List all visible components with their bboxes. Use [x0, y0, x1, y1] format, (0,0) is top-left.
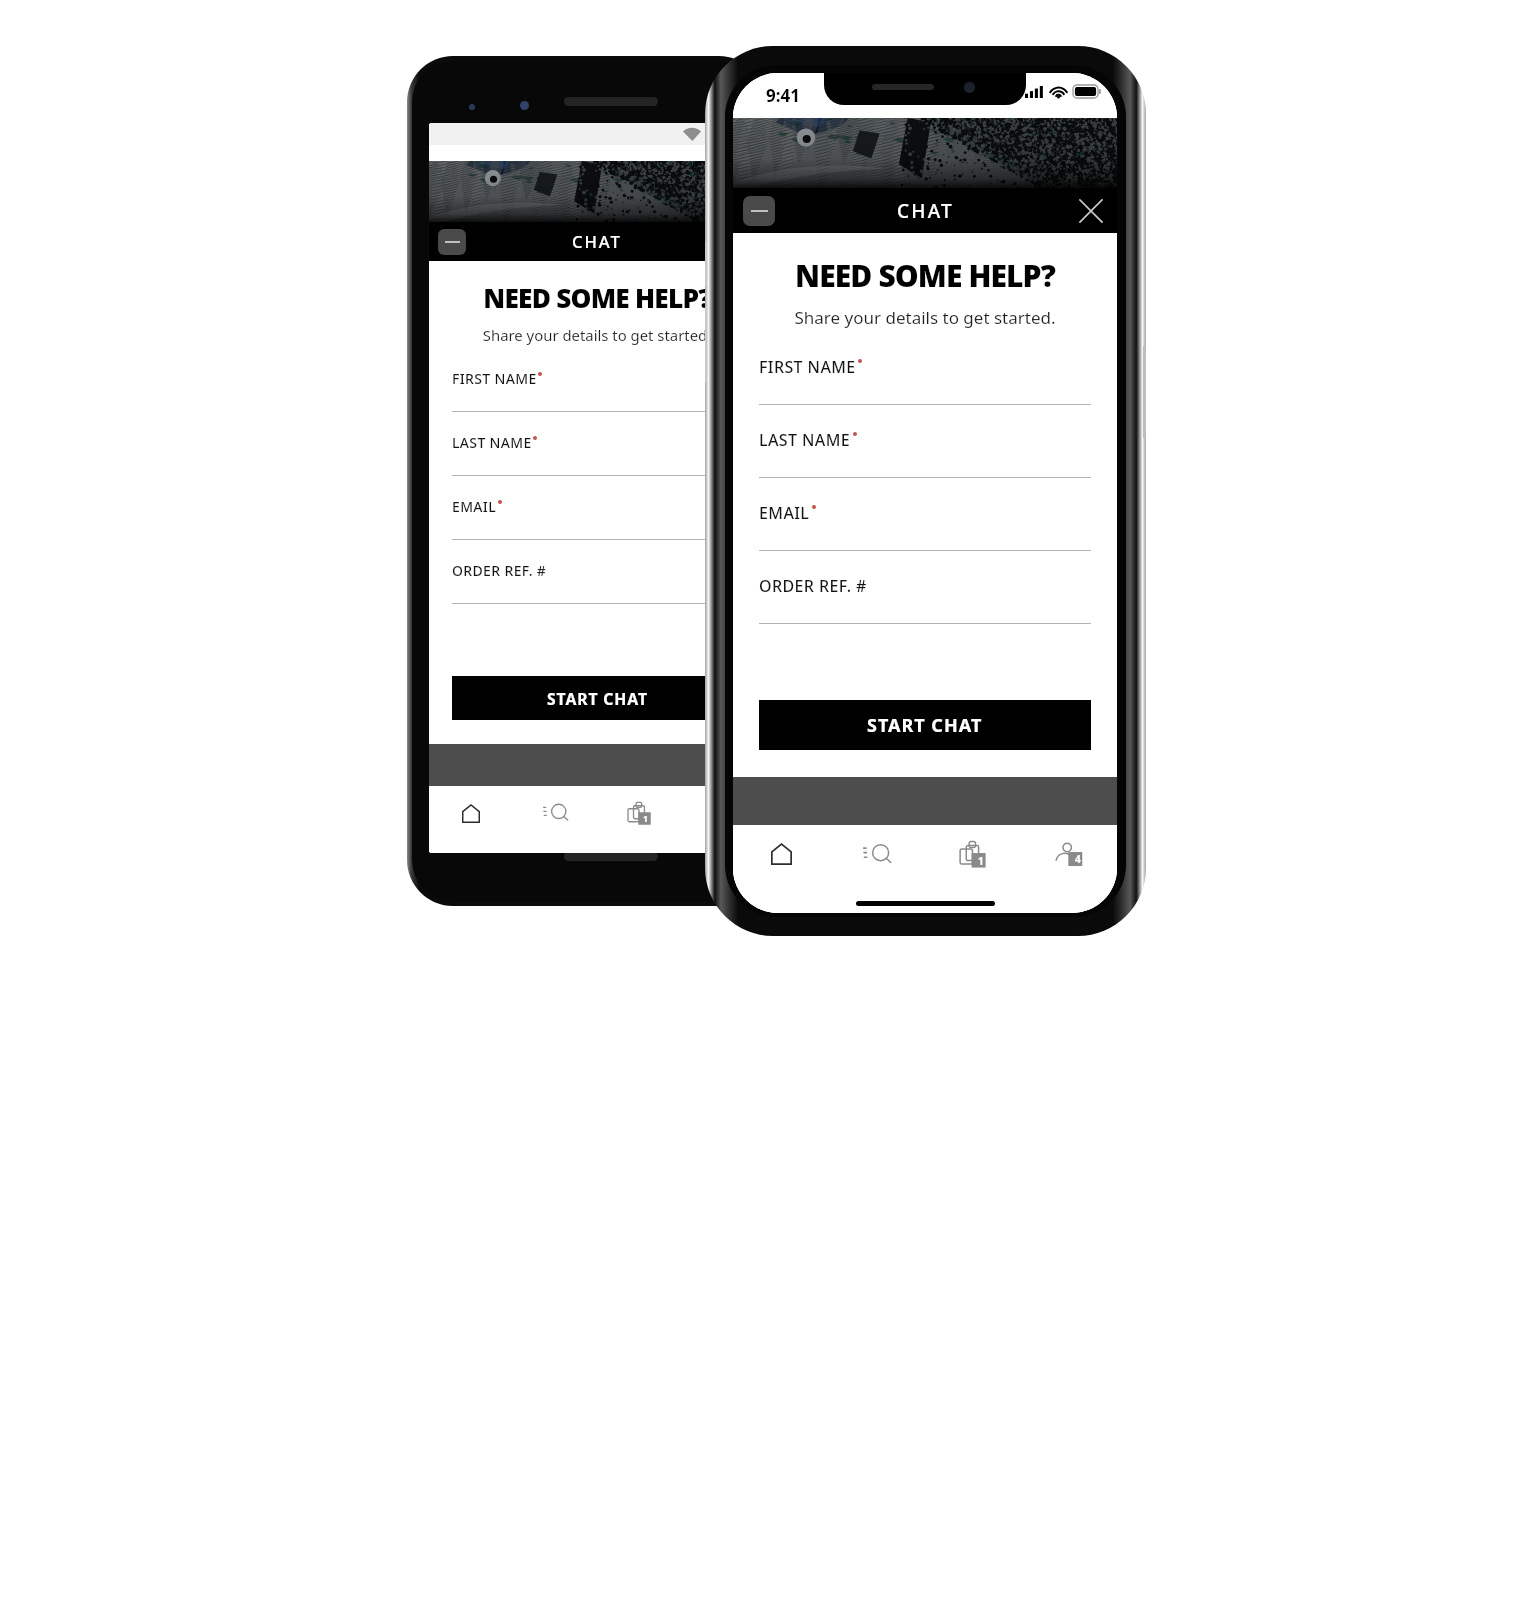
- staticText: 1: [978, 854, 984, 868]
- button[interactable]: Minimize chat: [743, 196, 775, 226]
- button[interactable]: Account, 4 updates: [681, 792, 765, 834]
- staticText: EMAIL: [452, 497, 497, 516]
- button[interactable]: Minimize chat: [438, 229, 466, 255]
- staticText: 9:41: [766, 84, 800, 107]
- staticText: Share your details to get started.: [733, 306, 1117, 329]
- staticText: ORDER REF. #: [452, 561, 547, 580]
- staticText: START CHAT: [547, 688, 648, 709]
- button[interactable]: Bag, 1 item: [597, 792, 681, 834]
- staticText: FIRST NAME: [759, 356, 856, 378]
- button[interactable]: Home: [733, 830, 829, 878]
- staticText: 1: [643, 813, 649, 825]
- button[interactable]: Search: [829, 830, 925, 878]
- button[interactable]: Account, 4 updates: [1021, 830, 1117, 878]
- staticText: ORDER REF. #: [759, 575, 867, 597]
- button[interactable]: Bag, 1 item: [925, 830, 1021, 878]
- staticText: NEED SOME HELP?: [733, 255, 1117, 296]
- staticText: FIRST NAME: [452, 369, 537, 388]
- button[interactable]: Close chat: [1074, 194, 1108, 228]
- staticText: Share your details to get started.: [429, 325, 765, 345]
- staticText: LAST NAME: [759, 429, 851, 451]
- button[interactable]: Home: [429, 792, 513, 834]
- button[interactable]: Close chat: [727, 227, 757, 257]
- staticText: EMAIL: [759, 502, 810, 524]
- staticText: START CHAT: [867, 713, 983, 738]
- button[interactable]: START CHAT: [759, 700, 1091, 750]
- button[interactable]: START CHAT: [452, 676, 742, 720]
- staticText: 4: [1075, 852, 1081, 866]
- staticText: CHAT: [897, 198, 954, 224]
- staticText: LAST NAME: [452, 433, 532, 452]
- staticText: CHAT: [572, 230, 622, 253]
- button[interactable]: Search: [513, 792, 597, 834]
- staticText: NEED SOME HELP?: [429, 280, 765, 316]
